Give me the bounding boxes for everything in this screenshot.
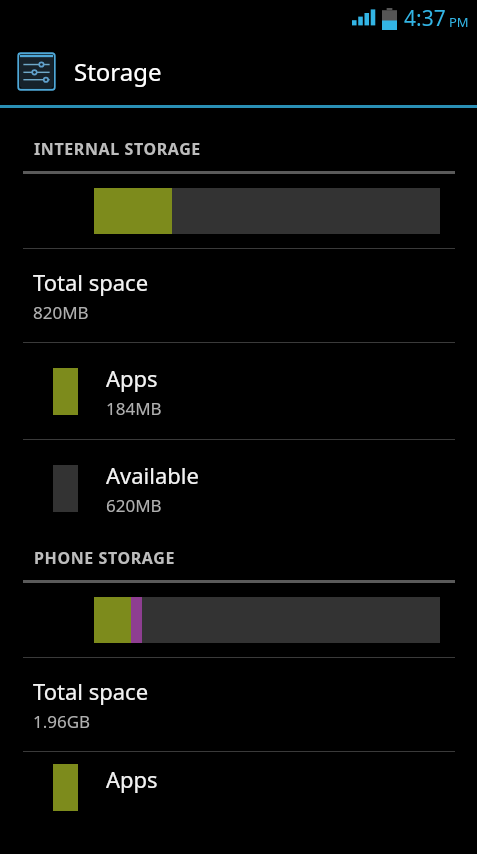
staticText: Apps [106, 363, 158, 393]
staticText: Available [106, 460, 199, 490]
staticText: 620MB [106, 494, 162, 517]
button[interactable]: Apps [0, 752, 477, 812]
staticText: PM [449, 13, 469, 31]
staticText: 1.96GB [33, 710, 91, 733]
staticText: 184MB [106, 397, 162, 420]
button[interactable]: Apps [0, 343, 477, 439]
button[interactable]: Total space [0, 249, 477, 342]
other: Settings [16, 51, 57, 92]
staticText: Apps [106, 764, 158, 794]
staticText: Storage [74, 55, 162, 88]
button[interactable]: Total space [0, 658, 477, 751]
staticText: PHONE STORAGE [34, 547, 175, 569]
staticText: INTERNAL STORAGE [34, 138, 201, 160]
button[interactable]: Settings [0, 37, 477, 105]
button[interactable]: Available [0, 440, 477, 536]
staticText: Total space [33, 267, 149, 297]
staticText: 820MB [33, 301, 89, 324]
staticText: 4:37 [404, 4, 446, 33]
staticText: Total space [33, 676, 149, 706]
